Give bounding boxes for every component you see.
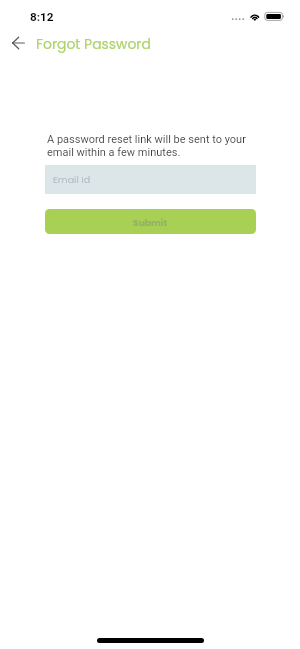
staticText: A password reset link will be sent to yo… <box>47 133 258 158</box>
staticText: Submit <box>133 216 168 229</box>
button[interactable]: Back <box>6 31 30 55</box>
button[interactable]: Submit <box>45 209 256 234</box>
staticText: Forgot Password <box>36 34 151 53</box>
button[interactable]: Email Id <box>45 165 256 194</box>
staticText: Email Id <box>53 173 91 186</box>
staticText: 8:12 <box>30 10 54 24</box>
